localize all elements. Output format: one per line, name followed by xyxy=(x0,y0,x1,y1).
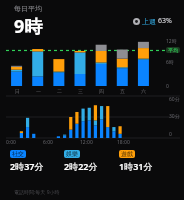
staticText: 0 xyxy=(166,83,169,90)
staticText: 0 xyxy=(169,131,172,138)
staticText: 四 xyxy=(99,88,104,94)
staticText: 9時 xyxy=(14,14,43,38)
button[interactable]: 遊戲 xyxy=(119,150,174,172)
staticText: 平均 xyxy=(168,47,178,53)
button[interactable]: 上週比較 xyxy=(133,16,172,26)
staticText: 一 xyxy=(36,88,41,94)
staticText: 電話時間:每天 9小時 xyxy=(14,189,60,196)
staticText: 18:00 xyxy=(117,139,130,146)
staticText: 12時 xyxy=(166,38,177,45)
staticText: 娛樂 xyxy=(66,150,78,158)
staticText: 遊戲 xyxy=(121,150,133,158)
button[interactable]: 娛樂 xyxy=(64,150,119,172)
staticText: 2時37分 xyxy=(10,160,44,172)
staticText: 每日平均 xyxy=(14,4,42,13)
staticText: 60分 xyxy=(169,96,180,103)
staticText: 五 xyxy=(120,88,125,94)
staticText: 6時 xyxy=(166,59,174,66)
staticText: 二 xyxy=(57,88,62,94)
staticText: 上週 xyxy=(142,17,156,26)
staticText: 社交 xyxy=(12,150,24,158)
staticText: 63% xyxy=(158,16,172,26)
staticText: 六 xyxy=(141,88,146,94)
staticText: 0:00 xyxy=(6,139,16,146)
staticText: 三 xyxy=(78,88,83,94)
staticText: 30分 xyxy=(169,113,180,120)
staticText: 1時31分 xyxy=(119,160,153,172)
staticText: 12:00 xyxy=(80,139,93,146)
button[interactable]: 社交 xyxy=(10,150,64,172)
staticText: 6:00 xyxy=(43,139,53,146)
staticText: 日 xyxy=(15,88,20,94)
staticText: 2時22分 xyxy=(64,160,98,172)
